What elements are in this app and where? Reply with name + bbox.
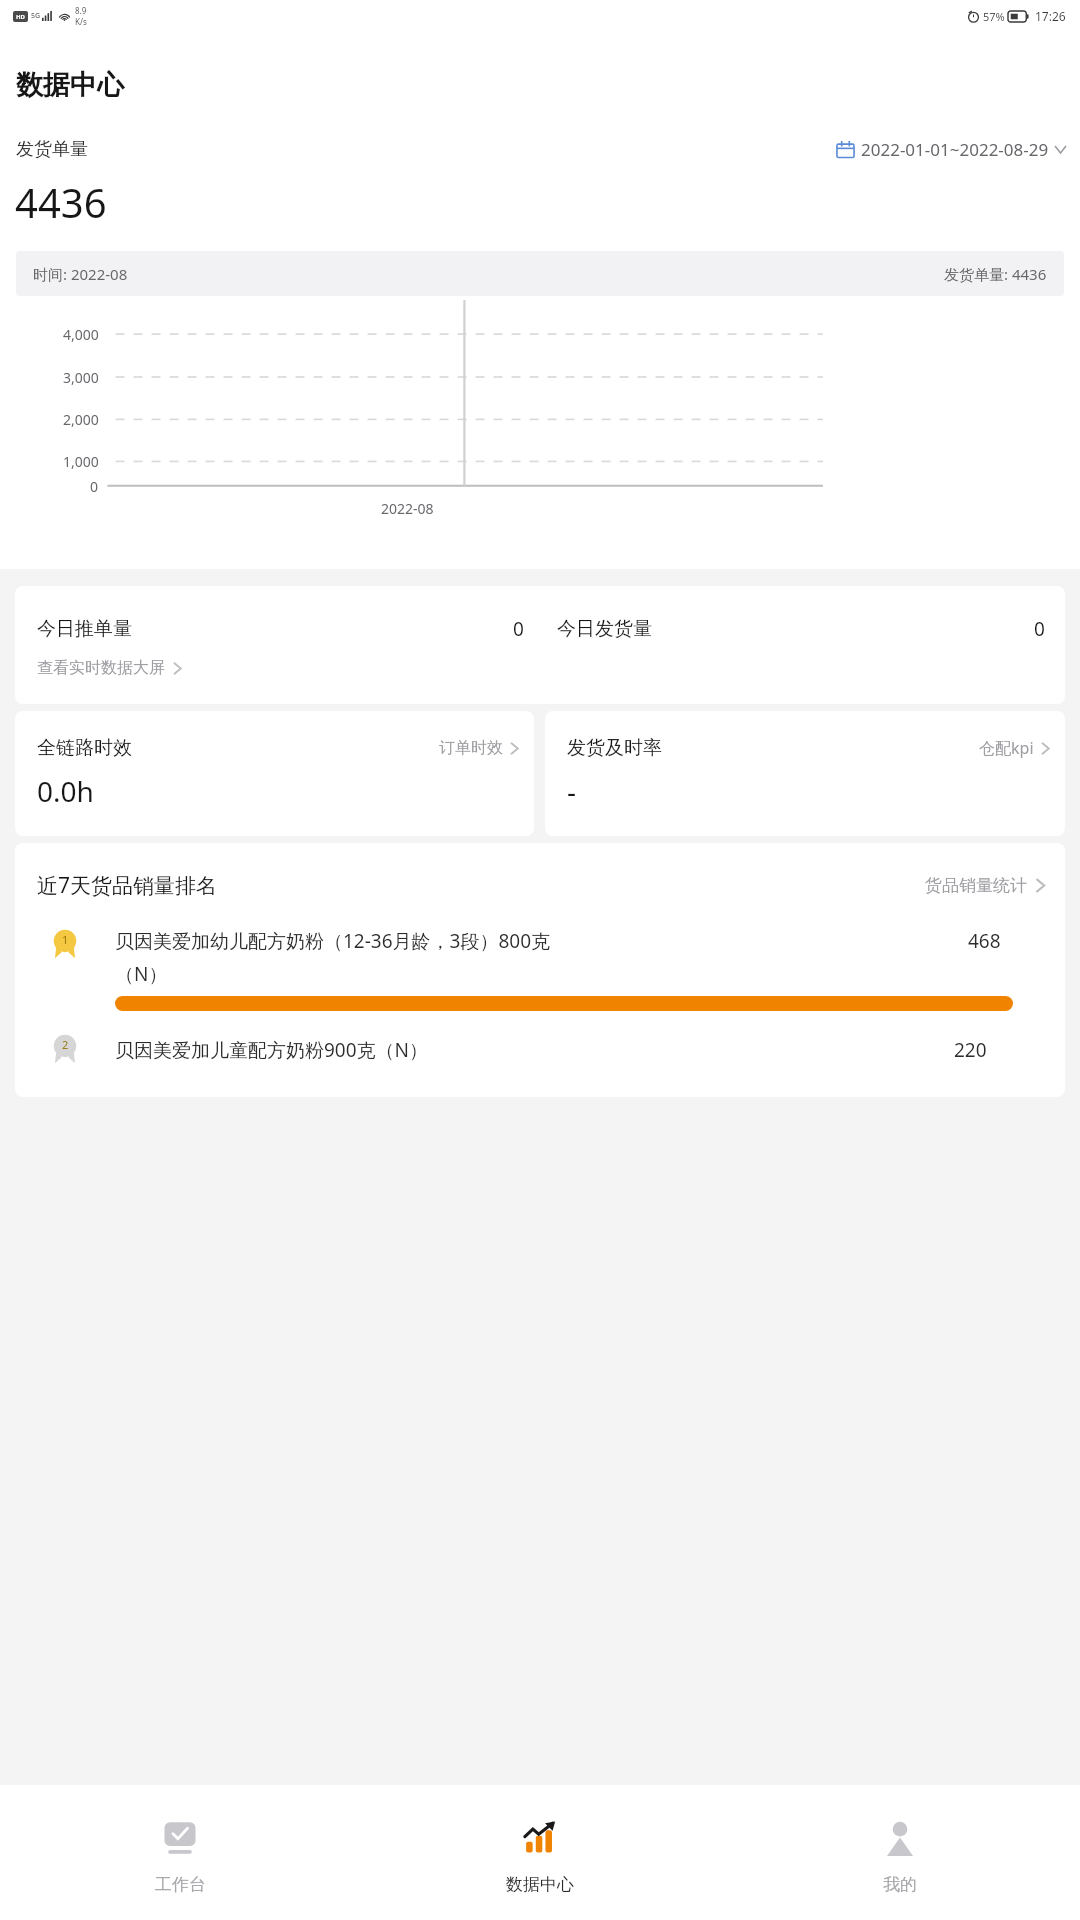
staticText: 2022-08 (381, 499, 434, 518)
button[interactable]: 2 (15, 1033, 1065, 1067)
staticText: 查看实时数据大屏 (37, 658, 165, 678)
button[interactable]: Date range (836, 134, 1066, 165)
button[interactable]: 发货及时率 (545, 711, 1065, 836)
staticText: 全链路时效 (37, 736, 132, 760)
other: 我的 (879, 1819, 921, 1861)
staticText: 今日发货量 (557, 617, 652, 641)
staticText: 时间: 2022-08 (33, 264, 128, 284)
staticText: 订单时效 (439, 738, 503, 758)
staticText: 近7天货品销量排名 (37, 871, 218, 900)
staticText: 5G (31, 11, 41, 21)
staticText: 0 (513, 616, 524, 642)
staticText: 工作台 (155, 1874, 206, 1895)
staticText: 2 (62, 1037, 69, 1052)
staticText: 0.0h (37, 772, 94, 810)
staticText: 数据中心 (16, 68, 124, 102)
staticText: 4,000 (63, 325, 99, 344)
button[interactable]: 今日推单量 (15, 586, 1065, 704)
button[interactable]: 1 (15, 928, 1065, 1011)
other: 数据中心 (519, 1819, 561, 1861)
staticText: 1 (62, 932, 69, 947)
staticText: 我的 (883, 1874, 917, 1895)
other: Date range (836, 140, 855, 159)
button[interactable]: 查看实时数据大屏 (37, 658, 185, 678)
staticText: 4436 (15, 175, 107, 229)
other: 工作台 (159, 1819, 201, 1861)
staticText: 220 (954, 1037, 987, 1063)
staticText: 8.9 (75, 5, 87, 16)
staticText: K/s (75, 16, 87, 27)
staticText: 仓配kpi (979, 737, 1034, 759)
staticText: 数据中心 (506, 1874, 574, 1895)
staticText: 0 (1034, 616, 1045, 642)
staticText: 1,000 (63, 452, 99, 471)
staticText: 贝因美爱加幼儿配方奶粉（12-36月龄，3段）800克 （N） (115, 928, 551, 987)
staticText: 发货单量: 4436 (944, 264, 1047, 284)
staticText: 57% (983, 9, 1005, 24)
button[interactable]: 我的 (720, 1785, 1080, 1920)
staticText: 2022-01-01~2022-08-29 (861, 138, 1049, 161)
staticText: 3,000 (63, 368, 99, 387)
staticText: 今日推单量 (37, 617, 132, 641)
staticText: 贝因美爱加儿童配方奶粉900克（N） (115, 1037, 429, 1063)
staticText: 发货及时率 (567, 736, 662, 760)
staticText: 468 (968, 928, 1001, 954)
staticText: 2,000 (63, 410, 99, 429)
staticText: 17:26 (1035, 8, 1066, 24)
button[interactable]: 数据中心 (360, 1785, 720, 1920)
staticText: HD (16, 13, 25, 21)
staticText: 0 (90, 477, 99, 496)
staticText: 货品销量统计 (925, 875, 1027, 896)
staticText: 发货单量 (16, 138, 88, 161)
staticText: - (567, 772, 577, 810)
button[interactable]: 工作台 (0, 1785, 360, 1920)
button[interactable]: 近7天货品销量排名 (15, 843, 1065, 906)
button[interactable]: 全链路时效 (15, 711, 534, 836)
